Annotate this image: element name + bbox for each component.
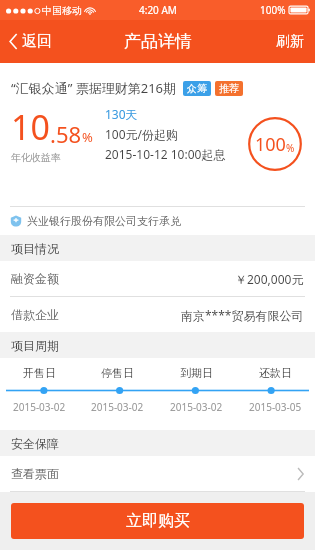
staticText: 开售日 [23,366,56,380]
staticText: 刷新 [276,33,304,51]
button[interactable]: 返回 [0,20,95,63]
staticText: 立即购买 [126,511,190,531]
staticText: 还款日 [259,366,292,380]
staticText: 100% [260,3,286,17]
staticText: 项目周期 [11,338,59,353]
button[interactable]: 借款企业 [0,297,315,332]
staticText: % [82,128,93,146]
staticText: 100元/份起购 [105,126,179,142]
staticText: % [286,141,295,155]
staticText: 南京****贸易有限公司 [181,307,304,323]
staticText: 2015-03-02 [91,400,144,414]
button[interactable]: 立即购买 [11,503,304,539]
staticText: 4:20 AM [139,3,177,17]
staticText: 融资金额 [11,271,59,286]
staticText: 兴业银行股份有限公司支行承兑 [27,214,181,228]
staticText: 安全保障 [11,436,59,451]
staticText: 100 [255,132,286,157]
staticText: 130天 [105,106,138,122]
staticText: ￥200,000元 [235,271,304,287]
staticText: 众筹 [187,82,207,95]
staticText: 2015-03-05 [249,400,302,414]
staticText: 10 [11,104,50,150]
other: View bill details [297,468,304,480]
button[interactable]: 刷新 [265,20,315,63]
staticText: 查看票面 [11,466,59,481]
staticText: 中国移动 [42,4,82,17]
staticText: 借款企业 [11,307,59,322]
staticText: 停售日 [101,366,134,380]
staticText: 到期日 [180,366,213,380]
staticText: 2015-10-12 10:00起息 [105,146,226,162]
staticText: 产品详情 [124,31,192,52]
staticText: “汇银众通” 票据理财第216期 [11,79,177,97]
button[interactable]: 查看票面 [0,456,315,491]
button[interactable]: 融资金额 [0,261,315,296]
staticText: 2015-03-02 [13,400,66,414]
staticText: 2015-03-02 [170,400,223,414]
staticText: 年化收益率 [11,151,61,164]
staticText: 返回 [22,32,52,51]
staticText: .58 [50,119,82,149]
staticText: 项目情况 [11,241,59,256]
staticText: 推荐 [219,82,239,95]
